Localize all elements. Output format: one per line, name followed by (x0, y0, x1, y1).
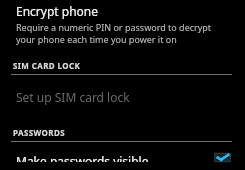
staticText: Set up SIM card lock (16, 89, 130, 105)
staticText: Make passwords visible (16, 153, 208, 162)
staticText: SIM CARD LOCK (13, 60, 81, 71)
button[interactable]: Encrypt phone (0, 0, 245, 51)
button[interactable]: Set up SIM card lock (0, 75, 245, 119)
staticText: Encrypt phone (16, 3, 98, 19)
staticText: PASSWORDS (13, 127, 66, 138)
staticText: your phone each time you power it on (16, 33, 177, 45)
button[interactable]: Make passwords visible (0, 142, 245, 170)
staticText: Require a numeric PIN or password to dec… (16, 21, 212, 33)
other: Make passwords visible checkbox (214, 153, 231, 162)
